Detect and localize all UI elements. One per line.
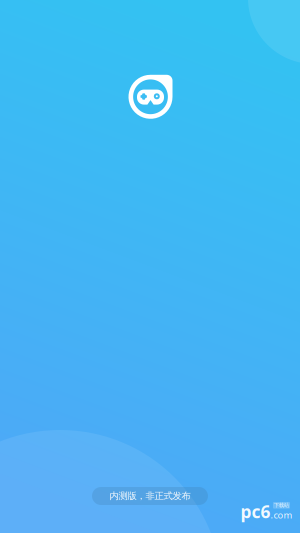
staticText: pc6 bbox=[240, 500, 270, 523]
staticText: 内测版，非正式发布 bbox=[109, 490, 190, 502]
staticText: .com bbox=[270, 509, 292, 521]
staticText: 下载站 bbox=[274, 502, 289, 509]
button[interactable]: 内测版，非正式发布 bbox=[92, 487, 208, 505]
